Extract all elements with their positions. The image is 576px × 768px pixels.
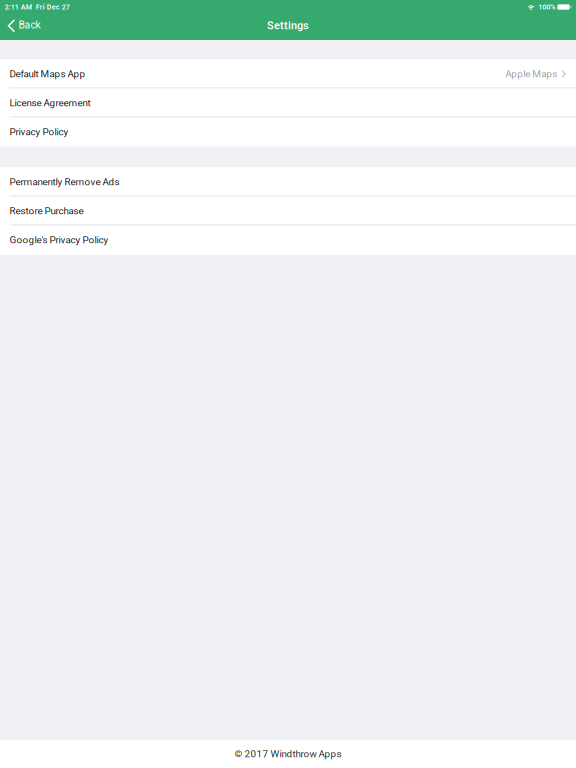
button[interactable]: License Agreement [0, 88, 576, 117]
staticText: Google's Privacy Policy [9, 234, 108, 246]
button[interactable]: Default Maps App [0, 59, 576, 88]
button[interactable]: Back [0, 14, 50, 40]
staticText: Restore Purchase [9, 205, 83, 217]
staticText: 100% [538, 3, 555, 11]
staticText: Back [18, 19, 40, 31]
staticText: Apple Maps [505, 68, 557, 80]
staticText: Fri Dec 27 [36, 3, 70, 11]
button[interactable]: Privacy Policy [0, 117, 576, 146]
staticText: 2:11 AM [5, 3, 32, 11]
staticText: Settings [267, 19, 309, 32]
staticText: © 2017 Windthrow Apps [234, 748, 341, 760]
staticText: Default Maps App [9, 68, 85, 80]
button[interactable]: Permanently Remove Ads [0, 167, 576, 196]
button[interactable]: Restore Purchase [0, 196, 576, 225]
button[interactable]: Google's Privacy Policy [0, 225, 576, 254]
staticText: Privacy Policy [9, 126, 68, 138]
staticText: License Agreement [9, 97, 90, 109]
staticText: Permanently Remove Ads [9, 176, 119, 188]
